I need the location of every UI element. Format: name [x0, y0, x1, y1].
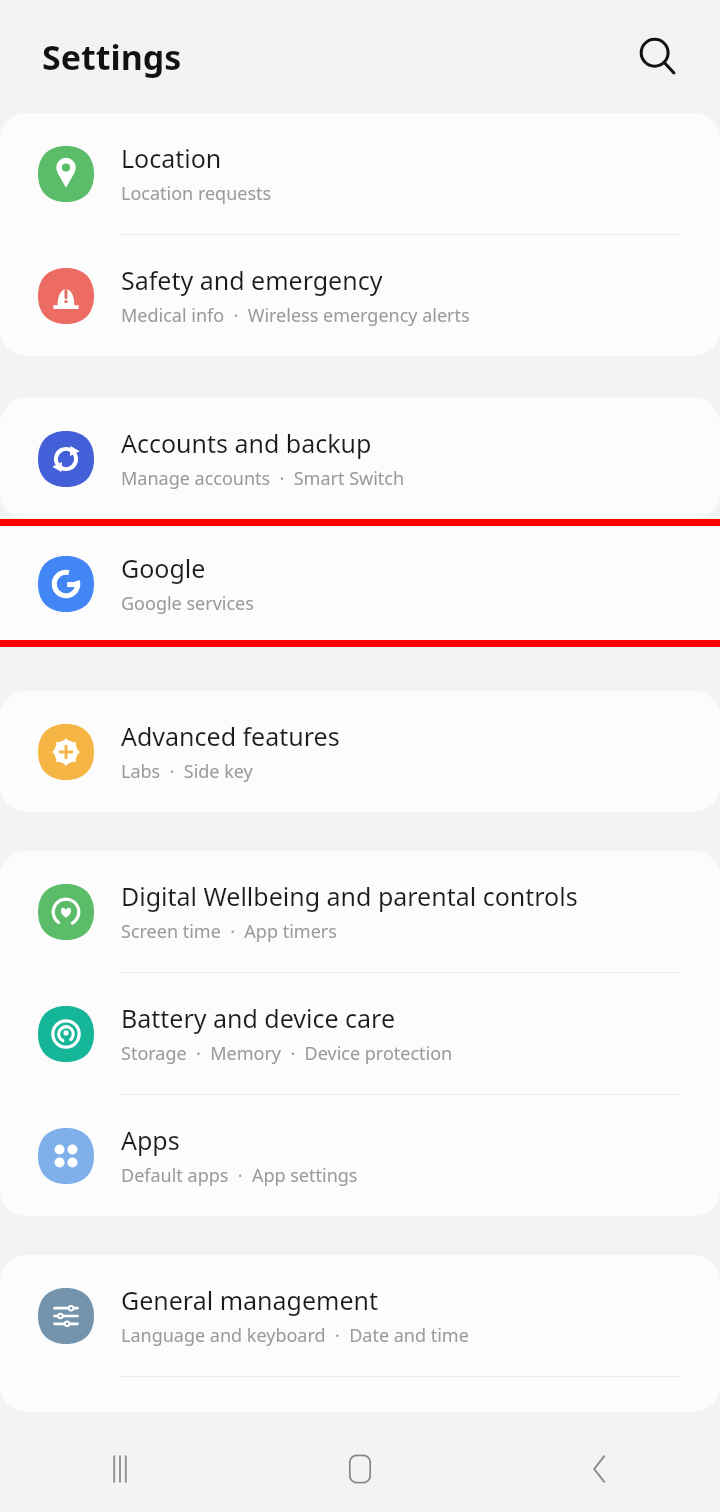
staticText: Labs · Side key [121, 759, 253, 784]
staticText: Location requests [121, 181, 272, 206]
button[interactable]: Search [630, 29, 686, 85]
button[interactable]: Home [240, 1425, 480, 1512]
staticText: Screen time · App timers [121, 919, 337, 944]
staticText: Location [121, 141, 222, 175]
staticText: Storage · Memory · Device protection [121, 1041, 453, 1066]
staticText: Apps [121, 1123, 180, 1157]
staticText: Accounts and backup [121, 426, 372, 460]
button[interactable]: Battery and device care [0, 973, 720, 1094]
staticText: General management [121, 1283, 378, 1317]
staticText: Safety and emergency [121, 263, 383, 297]
staticText: Advanced features [121, 719, 340, 753]
button[interactable]: Safety and emergency [0, 235, 720, 356]
staticText: Battery and device care [121, 1001, 396, 1035]
staticText: Digital Wellbeing and parental controls [121, 879, 578, 913]
button[interactable]: Advanced features [0, 691, 720, 812]
button[interactable]: Apps [0, 1095, 720, 1216]
button[interactable]: Back [480, 1425, 720, 1512]
button[interactable]: Accounts and backup [0, 398, 720, 519]
staticText: Manage accounts · Smart Switch [121, 466, 405, 491]
staticText: Default apps · App settings [121, 1163, 358, 1188]
staticText: Medical info · Wireless emergency alerts [121, 303, 470, 328]
staticText: Language and keyboard · Date and time [121, 1323, 469, 1348]
button[interactable]: Digital Wellbeing and parental controls [0, 851, 720, 972]
button[interactable]: Recent apps [0, 1425, 240, 1512]
staticText: Settings [42, 34, 182, 80]
staticText: Google services [121, 591, 254, 616]
button[interactable]: General management [0, 1255, 720, 1376]
staticText: Google [121, 551, 206, 585]
button[interactable]: Google [0, 526, 720, 640]
button[interactable]: Location [0, 113, 720, 234]
